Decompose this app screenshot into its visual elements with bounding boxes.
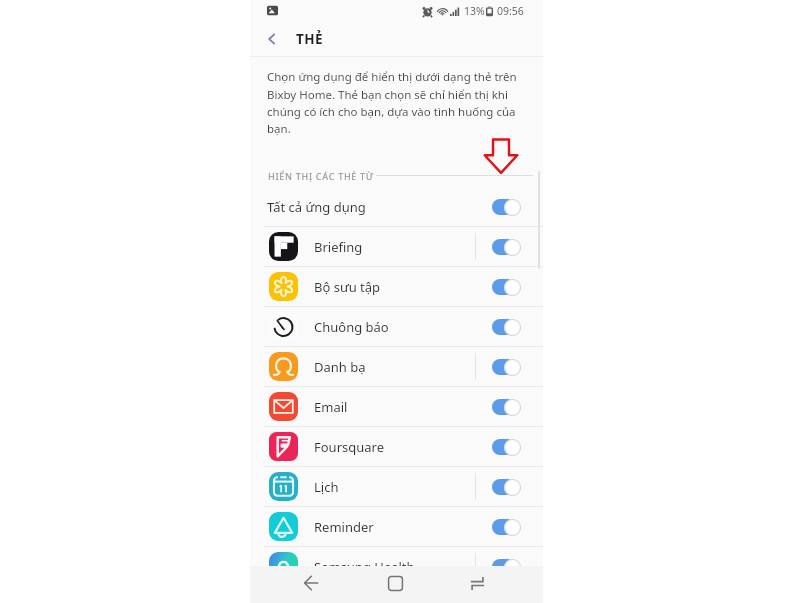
staticText: Email bbox=[314, 398, 348, 416]
button[interactable]: Samsung Health bbox=[250, 547, 543, 586]
button[interactable]: Reminder bbox=[250, 507, 543, 546]
staticText: THẺ bbox=[296, 30, 324, 48]
button[interactable]: Foursquare bbox=[250, 427, 543, 466]
staticText: HIỂN THỊ CÁC THẺ TỪ bbox=[268, 170, 374, 182]
staticText: Reminder bbox=[314, 518, 374, 536]
button[interactable]: Recent apps bbox=[460, 566, 494, 600]
staticText: Briefing bbox=[314, 238, 363, 256]
staticText: Foursquare bbox=[314, 438, 385, 456]
staticText: Lịch bbox=[314, 478, 339, 496]
staticText: Bộ sưu tập bbox=[314, 278, 381, 296]
button[interactable]: Back bbox=[294, 566, 328, 600]
staticText: Chọn ứng dụng để hiển thị dưới dạng thẻ … bbox=[267, 69, 535, 136]
button[interactable]: Home bbox=[378, 566, 412, 600]
button[interactable]: Briefing bbox=[250, 227, 543, 266]
staticText: Samsung Health bbox=[314, 558, 415, 576]
button[interactable]: Danh bạ bbox=[250, 347, 543, 386]
staticText: Chuông báo bbox=[314, 318, 389, 336]
button[interactable]: Bộ sưu tập bbox=[250, 267, 543, 306]
staticText: Danh bạ bbox=[314, 358, 366, 376]
staticText: Tất cả ứng dụng bbox=[267, 198, 366, 216]
button[interactable]: Tất cả ứng dụng bbox=[250, 187, 543, 226]
staticText: 13% bbox=[464, 4, 485, 18]
button[interactable]: Back bbox=[260, 27, 284, 51]
button[interactable]: Email bbox=[250, 387, 543, 426]
staticText: 09:56 bbox=[497, 4, 524, 18]
button[interactable]: Chuông báo bbox=[250, 307, 543, 346]
button[interactable]: Lịch bbox=[250, 467, 543, 506]
